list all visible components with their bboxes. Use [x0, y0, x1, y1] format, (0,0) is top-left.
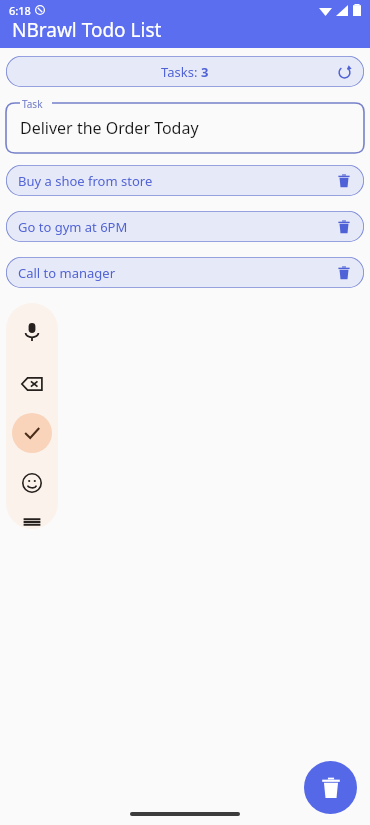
staticText: Deliver the Order Today	[20, 117, 199, 139]
button[interactable]: Voice input	[12, 312, 52, 352]
staticText: Task	[22, 97, 43, 111]
staticText: Buy a shoe from store	[18, 172, 153, 190]
button[interactable]: Emoji	[12, 463, 52, 503]
button[interactable]: Go to gym at 6PM	[6, 211, 364, 242]
staticText: 3	[201, 63, 209, 81]
button[interactable]: Buy a shoe from store	[6, 165, 364, 196]
button[interactable]: Delete task	[332, 215, 356, 239]
staticText: Call to manager	[18, 264, 116, 282]
staticText: NBrawl Todo List	[12, 17, 162, 43]
button[interactable]: Backspace	[12, 364, 52, 404]
button[interactable]: Call to manager	[6, 257, 364, 288]
button[interactable]: Delete task	[332, 261, 356, 285]
button[interactable]: Refresh	[332, 60, 356, 84]
button[interactable]: Confirm	[12, 413, 52, 453]
button[interactable]: Tasks:	[6, 56, 364, 87]
button[interactable]: Delete all tasks	[304, 761, 357, 814]
button[interactable]: Keyboard menu	[12, 515, 52, 529]
staticText: Tasks:	[161, 63, 201, 81]
staticText: 6:18	[9, 3, 31, 18]
button[interactable]: Delete task	[332, 169, 356, 193]
staticText: Go to gym at 6PM	[18, 218, 128, 236]
